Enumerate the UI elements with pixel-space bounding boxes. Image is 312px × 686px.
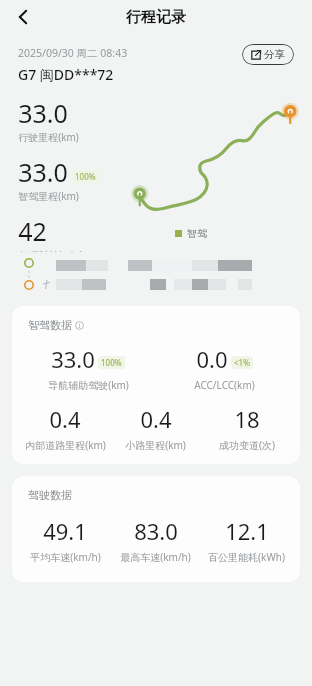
staticText: 智驾数据 (28, 318, 72, 332)
button[interactable]: Back (8, 2, 38, 32)
staticText: 平均车速(km/h) (30, 550, 101, 564)
staticText: 智驾里程(km) (18, 189, 79, 203)
staticText: 100% (75, 171, 96, 182)
staticText: 100% (101, 357, 122, 368)
staticText: 33.0 (51, 344, 95, 374)
staticText: <1% (234, 357, 250, 368)
staticText: 33.0 (18, 96, 68, 130)
staticText: 0.4 (49, 404, 81, 434)
staticText: 42 (18, 214, 47, 248)
staticText: 0.0 (196, 344, 228, 374)
staticText: 分享 (264, 48, 285, 61)
staticText: 百公里能耗(kWh) (208, 550, 285, 564)
staticText: 行驶里程(km) (18, 130, 79, 144)
staticText: 小路里程(km) (125, 438, 186, 452)
staticText: 行程记录 (126, 8, 186, 27)
staticText: ACC/LCC(km) (194, 378, 255, 392)
staticText: 83.0 (134, 516, 178, 546)
staticText: 0.4 (140, 404, 172, 434)
staticText: 49.1 (43, 516, 87, 546)
staticText: 33.0 (18, 155, 68, 189)
staticText: 2025/09/30 周二 08:43 (18, 46, 128, 60)
staticText: 最高车速(km/h) (120, 550, 191, 564)
staticText: 12.1 (225, 516, 269, 546)
staticText: G7 闽DD***72 (18, 65, 114, 84)
button[interactable]: 分享 (242, 44, 294, 65)
staticText: 18 (234, 404, 260, 434)
staticText: 导航辅助驾驶(km) (48, 378, 129, 392)
staticText: 行程时长(min) (18, 248, 83, 252)
staticText: 智驾 (187, 227, 207, 240)
staticText: 驾驶数据 (28, 488, 72, 502)
staticText: 内部道路里程(km) (25, 438, 106, 452)
staticText: 成功变道(次) (219, 438, 275, 452)
